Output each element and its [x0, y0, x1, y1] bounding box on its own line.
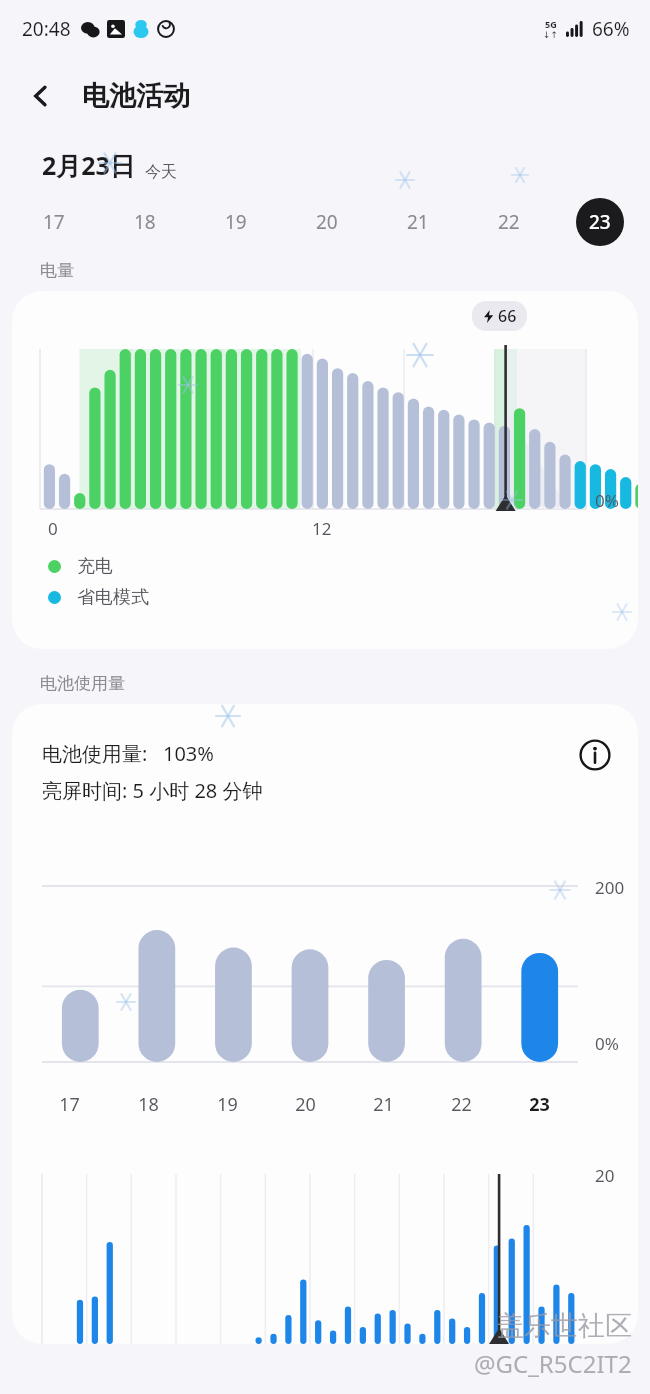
staticText: ↓↑	[543, 30, 559, 40]
staticText: 17	[59, 1092, 80, 1117]
staticText: 66	[498, 305, 517, 327]
staticText: 17	[43, 209, 65, 235]
staticText: 21	[373, 1092, 394, 1117]
button[interactable]: 18	[121, 198, 169, 246]
staticText: 亮屏时间: 5 小时 28 分钟	[42, 777, 263, 804]
staticText: 电量	[40, 260, 74, 281]
staticText: 0%	[595, 1032, 619, 1055]
staticText: 0%	[595, 489, 619, 512]
staticText: 充电	[77, 555, 113, 578]
staticText: 21	[407, 209, 429, 235]
button[interactable]: 66	[12, 291, 638, 649]
staticText: 省电模式	[77, 586, 149, 609]
staticText: 电池使用量	[40, 673, 125, 694]
staticText: 电池活动	[82, 79, 190, 113]
staticText: 22	[451, 1092, 472, 1117]
staticText: 19	[225, 209, 247, 235]
button[interactable]: Back	[14, 69, 68, 123]
staticText: 20:48	[22, 16, 71, 42]
staticText: 0	[48, 517, 58, 540]
button[interactable]: 20	[303, 198, 351, 246]
button[interactable]: 21	[394, 198, 442, 246]
staticText: 2月23日	[42, 148, 135, 182]
staticText: 200	[595, 876, 625, 899]
staticText: 20	[595, 1164, 615, 1187]
staticText: 盖乐世社区	[497, 1309, 632, 1343]
button[interactable]: Info	[572, 732, 618, 778]
staticText: 66%	[592, 16, 630, 42]
staticText: 18	[138, 1092, 159, 1117]
button[interactable]: 22	[485, 198, 533, 246]
staticText: 23	[529, 1092, 550, 1117]
staticText: 12	[312, 517, 332, 540]
staticText: 18	[134, 209, 156, 235]
staticText: 电池使用量: 103%	[42, 740, 214, 767]
staticText: 5G	[545, 18, 557, 30]
staticText: 今天	[145, 162, 177, 182]
staticText: 23	[589, 209, 611, 235]
button[interactable]: 17	[30, 198, 78, 246]
button[interactable]: 23	[576, 198, 624, 246]
staticText: 22	[498, 209, 520, 235]
staticText: @GC_R5C2IT2	[474, 1347, 632, 1380]
button[interactable]: 19	[212, 198, 260, 246]
staticText: 19	[217, 1092, 238, 1117]
staticText: 20	[295, 1092, 316, 1117]
staticText: 20	[316, 209, 338, 235]
